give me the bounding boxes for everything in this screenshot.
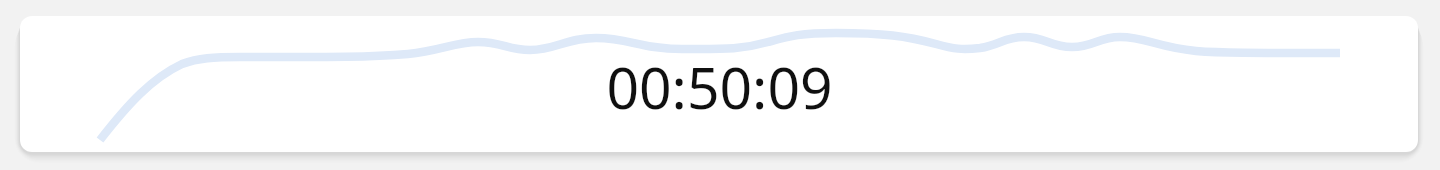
button[interactable]: Activity graph	[20, 16, 1418, 152]
other: Activity graph	[20, 16, 1418, 152]
staticText: 00:50:09	[606, 48, 833, 126]
